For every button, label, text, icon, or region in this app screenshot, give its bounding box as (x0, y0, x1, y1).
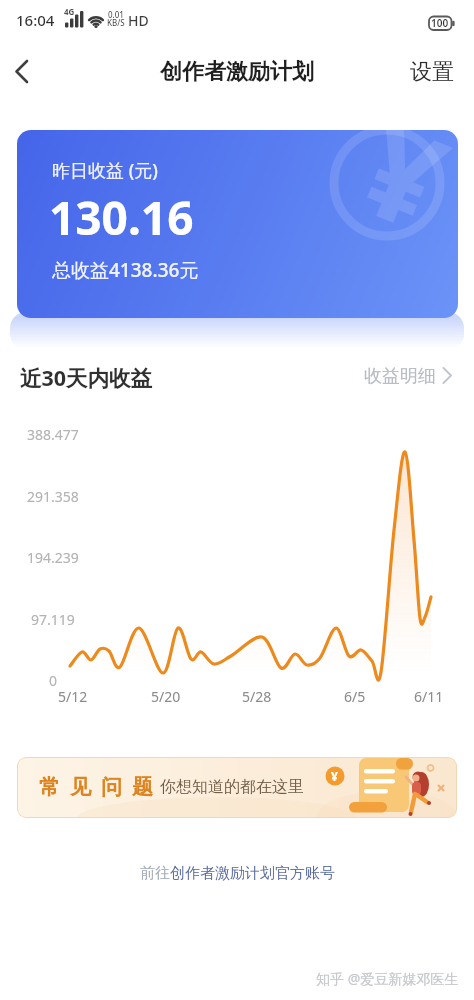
staticText: 100 (431, 16, 449, 30)
staticText: 你想知道的都在这里 (160, 777, 304, 797)
staticText: 388.477 (27, 425, 79, 444)
staticText: 97.119 (31, 610, 75, 629)
staticText: 前往 (140, 864, 170, 883)
staticText: 0 (49, 671, 58, 690)
button[interactable] (8, 54, 44, 90)
staticText: 创作者激励计划 (160, 58, 314, 86)
staticText: 6/11 (414, 687, 444, 706)
staticText: 194.239 (27, 548, 79, 567)
staticText: 291.358 (27, 487, 79, 506)
staticText: 0.01 (108, 9, 124, 20)
staticText: 16:04 (16, 10, 55, 30)
staticText: 常见问题 (34, 774, 158, 800)
staticText: 6/5 (344, 687, 366, 706)
staticText: 昨日收益 (元) (52, 158, 158, 183)
button[interactable]: ¥ (17, 130, 458, 318)
staticText: 总收益4138.36元 (52, 257, 199, 283)
staticText: 知乎 @爱豆新媒邓医生 (316, 969, 459, 988)
staticText: 近30天内收益 (20, 363, 153, 392)
staticText: 创作者激励计划官方账号 (170, 864, 335, 883)
staticText: HD (128, 11, 149, 30)
staticText: 4G (64, 6, 75, 17)
staticText: ¥ (331, 768, 338, 784)
staticText: 设置 (410, 58, 454, 86)
staticText: 5/12 (58, 687, 88, 706)
staticText: 5/20 (151, 687, 181, 706)
button[interactable] (358, 360, 458, 392)
staticText: KB/S (107, 17, 125, 28)
staticText: 130.16 (49, 186, 194, 246)
button[interactable]: 前往 (0, 858, 474, 888)
staticText: 收益明细 (364, 365, 436, 388)
button[interactable] (17, 757, 457, 818)
staticText: ¥ (337, 130, 458, 267)
staticText: 5/28 (242, 687, 272, 706)
button[interactable]: 设置 (404, 55, 460, 89)
